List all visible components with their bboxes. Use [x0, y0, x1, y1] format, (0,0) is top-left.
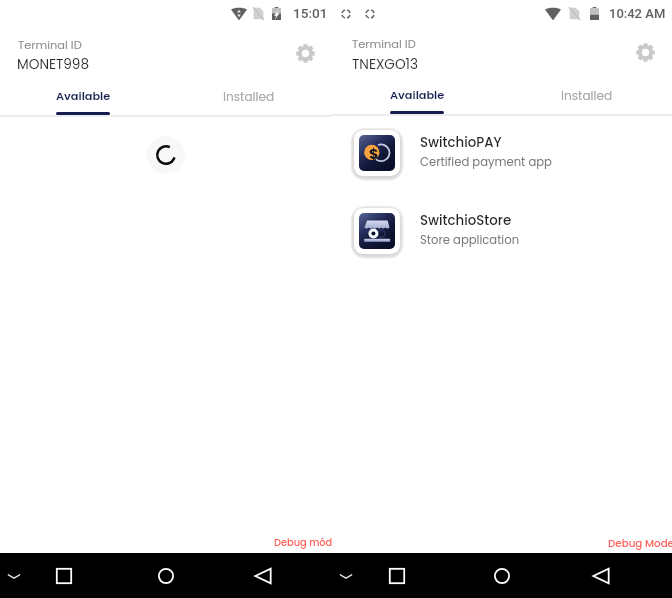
- staticText: SwitchioPAY: [420, 133, 502, 152]
- button[interactable]: Settings: [292, 40, 318, 66]
- staticText: TNEXGO13: [352, 55, 418, 74]
- staticText: Terminal ID: [352, 36, 416, 52]
- button[interactable]: Back: [247, 560, 279, 592]
- staticText: Debug Mode: [608, 536, 672, 550]
- staticText: Store application: [420, 232, 520, 248]
- staticText: Terminal ID: [18, 37, 82, 53]
- button[interactable]: Recents: [48, 560, 80, 592]
- staticText: Certified payment app: [420, 154, 552, 170]
- button[interactable]: Installed: [502, 84, 672, 114]
- button[interactable]: Available: [332, 84, 502, 114]
- button[interactable]: $: [332, 130, 672, 176]
- staticText: 15:01: [293, 5, 328, 21]
- button[interactable]: Home: [486, 560, 518, 592]
- button[interactable]: Installed: [166, 85, 332, 115]
- button[interactable]: Settings: [632, 39, 658, 65]
- staticText: $: [369, 144, 379, 164]
- staticText: Installed: [561, 87, 613, 104]
- button[interactable]: Home: [150, 560, 182, 592]
- staticText: Debug mód: [274, 536, 333, 550]
- button[interactable]: Recents: [381, 560, 413, 592]
- button[interactable]: Hide keyboard: [0, 562, 28, 590]
- button[interactable]: SwitchioStore: [332, 208, 672, 254]
- staticText: 10:42 AM: [609, 6, 666, 21]
- button[interactable]: Back: [585, 560, 617, 592]
- staticText: Available: [390, 87, 445, 103]
- staticText: MONET998: [17, 55, 89, 74]
- button[interactable]: Available: [0, 85, 166, 115]
- staticText: SwitchioStore: [420, 211, 512, 230]
- button[interactable]: Hide keyboard: [332, 562, 360, 590]
- staticText: Available: [56, 88, 111, 104]
- staticText: Installed: [223, 88, 275, 105]
